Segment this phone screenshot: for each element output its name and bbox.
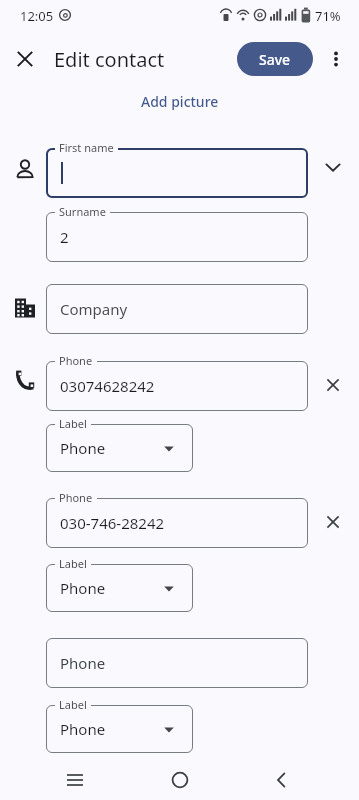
staticText: Add picture [141, 92, 219, 111]
button[interactable] [46, 705, 193, 753]
button[interactable] [11, 45, 39, 73]
staticText: Phone [60, 719, 106, 739]
button[interactable] [325, 45, 347, 73]
staticText: Phone [60, 578, 106, 598]
staticText: Phone [60, 653, 106, 673]
staticText: Save [259, 50, 291, 69]
staticText: Label [59, 416, 87, 431]
button[interactable] [321, 510, 345, 534]
button[interactable] [321, 373, 345, 397]
button[interactable]: Add picture [139, 90, 221, 112]
staticText: Surname [59, 204, 106, 219]
staticText: 030-746-28242 [60, 513, 165, 533]
staticText: Label [59, 556, 87, 571]
staticText: Edit contact [54, 46, 165, 73]
button[interactable] [46, 564, 193, 612]
staticText: First name [59, 140, 114, 155]
staticText: Phone [59, 353, 93, 368]
button[interactable] [267, 766, 295, 794]
staticText: 03074628242 [60, 376, 155, 396]
button[interactable] [46, 284, 308, 334]
staticText: 71% [315, 7, 341, 25]
staticText: 2 [60, 227, 69, 247]
button[interactable] [46, 424, 193, 472]
staticText: 12:05 [20, 7, 54, 25]
button[interactable] [61, 766, 89, 794]
button[interactable] [46, 638, 308, 688]
staticText: Phone [59, 490, 93, 505]
button[interactable] [46, 212, 308, 262]
button[interactable] [46, 148, 308, 198]
staticText: Label [59, 697, 87, 712]
staticText: Company [60, 299, 128, 319]
button[interactable] [166, 766, 194, 794]
button[interactable] [46, 361, 308, 411]
button[interactable] [46, 498, 308, 548]
staticText: Phone [60, 438, 106, 458]
button[interactable] [321, 155, 345, 179]
button[interactable]: Save [237, 42, 313, 76]
